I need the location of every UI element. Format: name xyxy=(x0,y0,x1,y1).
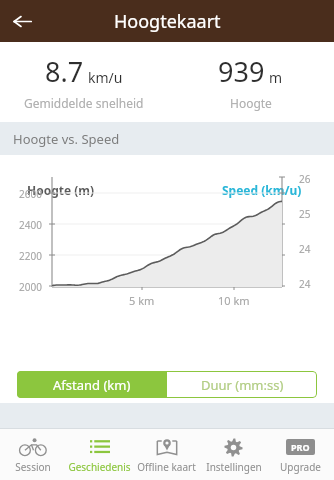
staticText: Hoogte vs. Speed xyxy=(13,130,120,148)
button[interactable]: Afstand (km) xyxy=(17,371,167,398)
staticText: Geschiedenis xyxy=(68,460,131,474)
staticText: 10 km xyxy=(218,293,250,308)
staticText: Hoogte (m) xyxy=(27,182,95,198)
staticText: 8.7 xyxy=(45,53,84,90)
staticText: Offline kaart xyxy=(137,460,196,474)
button[interactable]: 8.7 xyxy=(0,42,167,122)
button[interactable]: Duur (mm:ss) xyxy=(167,371,317,398)
staticText: Instellingen xyxy=(206,460,262,474)
button[interactable]: Back xyxy=(4,3,40,39)
staticText: 2200 xyxy=(19,249,42,263)
staticText: Gemiddelde snelheid xyxy=(24,95,144,111)
staticText: 25 xyxy=(299,207,311,221)
staticText: Hoogte xyxy=(230,95,272,111)
staticText: 2600 xyxy=(19,187,42,201)
staticText: Upgrade xyxy=(280,460,321,474)
staticText: 24 xyxy=(299,242,311,256)
staticText: 939 xyxy=(218,53,265,90)
button[interactable]: Session xyxy=(0,429,66,480)
button[interactable]: 939 xyxy=(167,42,334,122)
button[interactable]: Offline kaart xyxy=(133,429,200,480)
staticText: m xyxy=(269,68,283,87)
staticText: 2400 xyxy=(19,218,42,232)
button[interactable]: Geschiedenis xyxy=(66,429,133,480)
staticText: 26 xyxy=(299,172,311,186)
staticText: 2000 xyxy=(19,280,42,294)
staticText: Duur (mm:ss) xyxy=(201,376,284,394)
staticText: Speed (km/u) xyxy=(222,182,302,198)
other: PRO xyxy=(291,441,310,453)
button[interactable]: PRO xyxy=(267,429,334,480)
staticText: Hoogtekaart xyxy=(114,9,221,34)
staticText: km/u xyxy=(88,68,123,87)
staticText: 24 xyxy=(299,277,311,291)
staticText: 5 km xyxy=(129,293,155,308)
button[interactable]: Instellingen xyxy=(200,429,267,480)
staticText: Afstand (km) xyxy=(53,376,131,394)
staticText: Session xyxy=(15,460,51,474)
staticText: PRO xyxy=(291,441,310,453)
